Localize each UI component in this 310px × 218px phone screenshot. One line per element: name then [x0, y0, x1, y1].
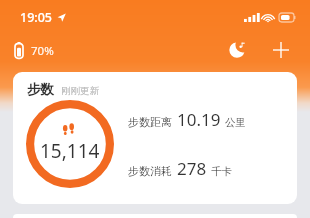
button[interactable]: Do not disturb	[224, 37, 250, 63]
staticText: 千卡	[211, 165, 232, 178]
staticText: 10.19	[177, 108, 221, 131]
button[interactable]: 70%	[14, 42, 54, 59]
staticText: 步数距离	[128, 115, 172, 129]
staticText: 刚刚更新	[61, 85, 99, 97]
staticText: 278	[177, 157, 207, 180]
staticText: 15,114	[40, 138, 100, 164]
button[interactable]: Add device	[268, 37, 294, 63]
staticText: 步数消耗	[128, 164, 172, 178]
staticText: 19:05	[20, 9, 53, 26]
staticText: 公里	[225, 116, 246, 129]
button[interactable]: 步数	[13, 72, 297, 204]
staticText: 步数	[27, 81, 54, 98]
staticText: 70%	[31, 43, 54, 59]
